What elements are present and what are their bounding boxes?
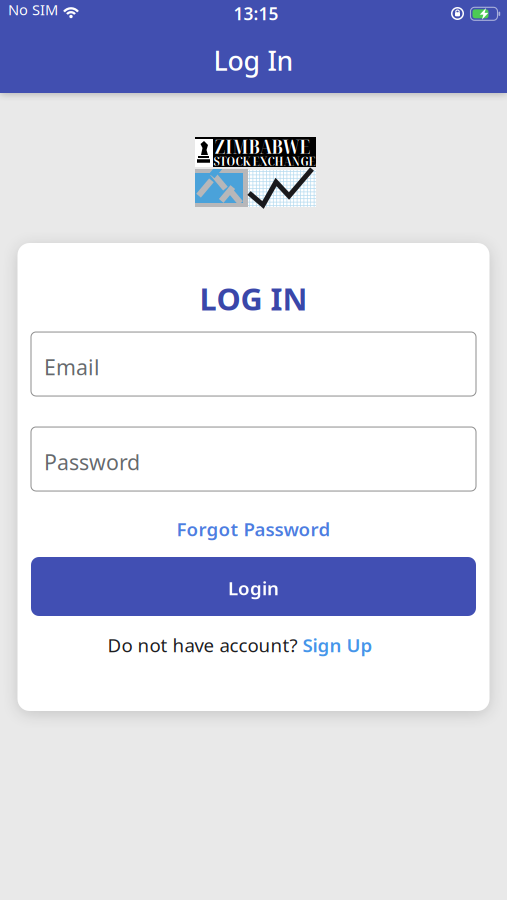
staticText: Log In bbox=[213, 43, 293, 78]
staticText: Sign Up bbox=[302, 633, 372, 657]
staticText: No SIM bbox=[8, 0, 58, 19]
staticText: ZIMBABWE bbox=[214, 132, 310, 160]
button[interactable]: Forgot Password bbox=[176, 517, 330, 541]
staticText: Login bbox=[228, 576, 279, 600]
button[interactable]: Login bbox=[31, 557, 476, 616]
staticText: Email bbox=[44, 353, 100, 381]
staticText: 13:15 bbox=[233, 2, 278, 25]
staticText: Password bbox=[44, 448, 140, 476]
staticText: LOG IN bbox=[199, 278, 307, 319]
button[interactable]: Sign Up bbox=[302, 633, 372, 657]
staticText: Do not have account? bbox=[107, 633, 297, 657]
staticText: Forgot Password bbox=[176, 517, 330, 541]
button[interactable]: Email bbox=[31, 332, 476, 396]
button[interactable]: Password bbox=[31, 427, 476, 491]
staticText: STOCK EXCHANGE bbox=[213, 151, 315, 170]
